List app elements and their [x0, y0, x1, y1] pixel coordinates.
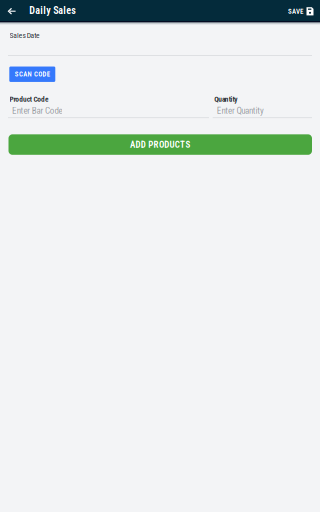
staticText: SAVE: [288, 7, 303, 15]
staticText: Enter Bar Code: [12, 105, 62, 116]
button[interactable]: Save: [288, 0, 320, 21]
button[interactable]: SCAN CODE: [9, 66, 55, 82]
staticText: Enter Quantity: [217, 105, 264, 116]
staticText: Daily Sales: [29, 5, 76, 16]
staticText: Product Code: [10, 95, 49, 103]
staticText: ADD PRODUCTS: [130, 139, 190, 150]
staticText: Quantity: [214, 95, 237, 103]
button[interactable]: ADD PRODUCTS: [8, 134, 312, 155]
staticText: SCAN CODE: [15, 70, 50, 78]
button[interactable]: Back: [0, 0, 23, 21]
staticText: Sales Date: [10, 31, 40, 40]
